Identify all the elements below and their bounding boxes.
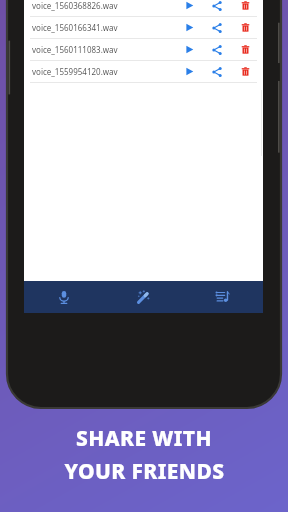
button[interactable]: Delete xyxy=(231,61,259,82)
staticText: YOUR FRIENDS xyxy=(64,457,225,486)
staticText: voice_1560111083.wav xyxy=(32,44,175,55)
button[interactable]: Play xyxy=(175,61,203,82)
button[interactable]: Play xyxy=(175,39,203,60)
button[interactable]: Share xyxy=(203,17,231,38)
button[interactable]: voice_1560166341.wav xyxy=(24,17,263,39)
button[interactable]: Effects xyxy=(103,281,183,313)
button[interactable]: Share xyxy=(203,61,231,82)
staticText: voice_1560166341.wav xyxy=(32,22,175,33)
staticText: voice_1560368826.wav xyxy=(32,0,175,11)
button[interactable]: Share xyxy=(203,0,231,16)
button[interactable]: Play xyxy=(175,0,203,16)
staticText: voice_1559954120.wav xyxy=(32,66,175,77)
button[interactable]: Share xyxy=(203,39,231,60)
staticText: SHARE WITH xyxy=(76,424,212,453)
button[interactable]: Delete xyxy=(231,17,259,38)
button[interactable]: voice_1559954120.wav xyxy=(24,61,263,83)
button[interactable]: Delete xyxy=(231,0,259,16)
button[interactable]: Playlist xyxy=(183,281,263,313)
button[interactable]: Play xyxy=(175,17,203,38)
button[interactable]: voice_1560368826.wav xyxy=(24,0,263,17)
button[interactable]: voice_1560111083.wav xyxy=(24,39,263,61)
button[interactable]: Record xyxy=(24,281,103,313)
button[interactable]: Delete xyxy=(231,39,259,60)
